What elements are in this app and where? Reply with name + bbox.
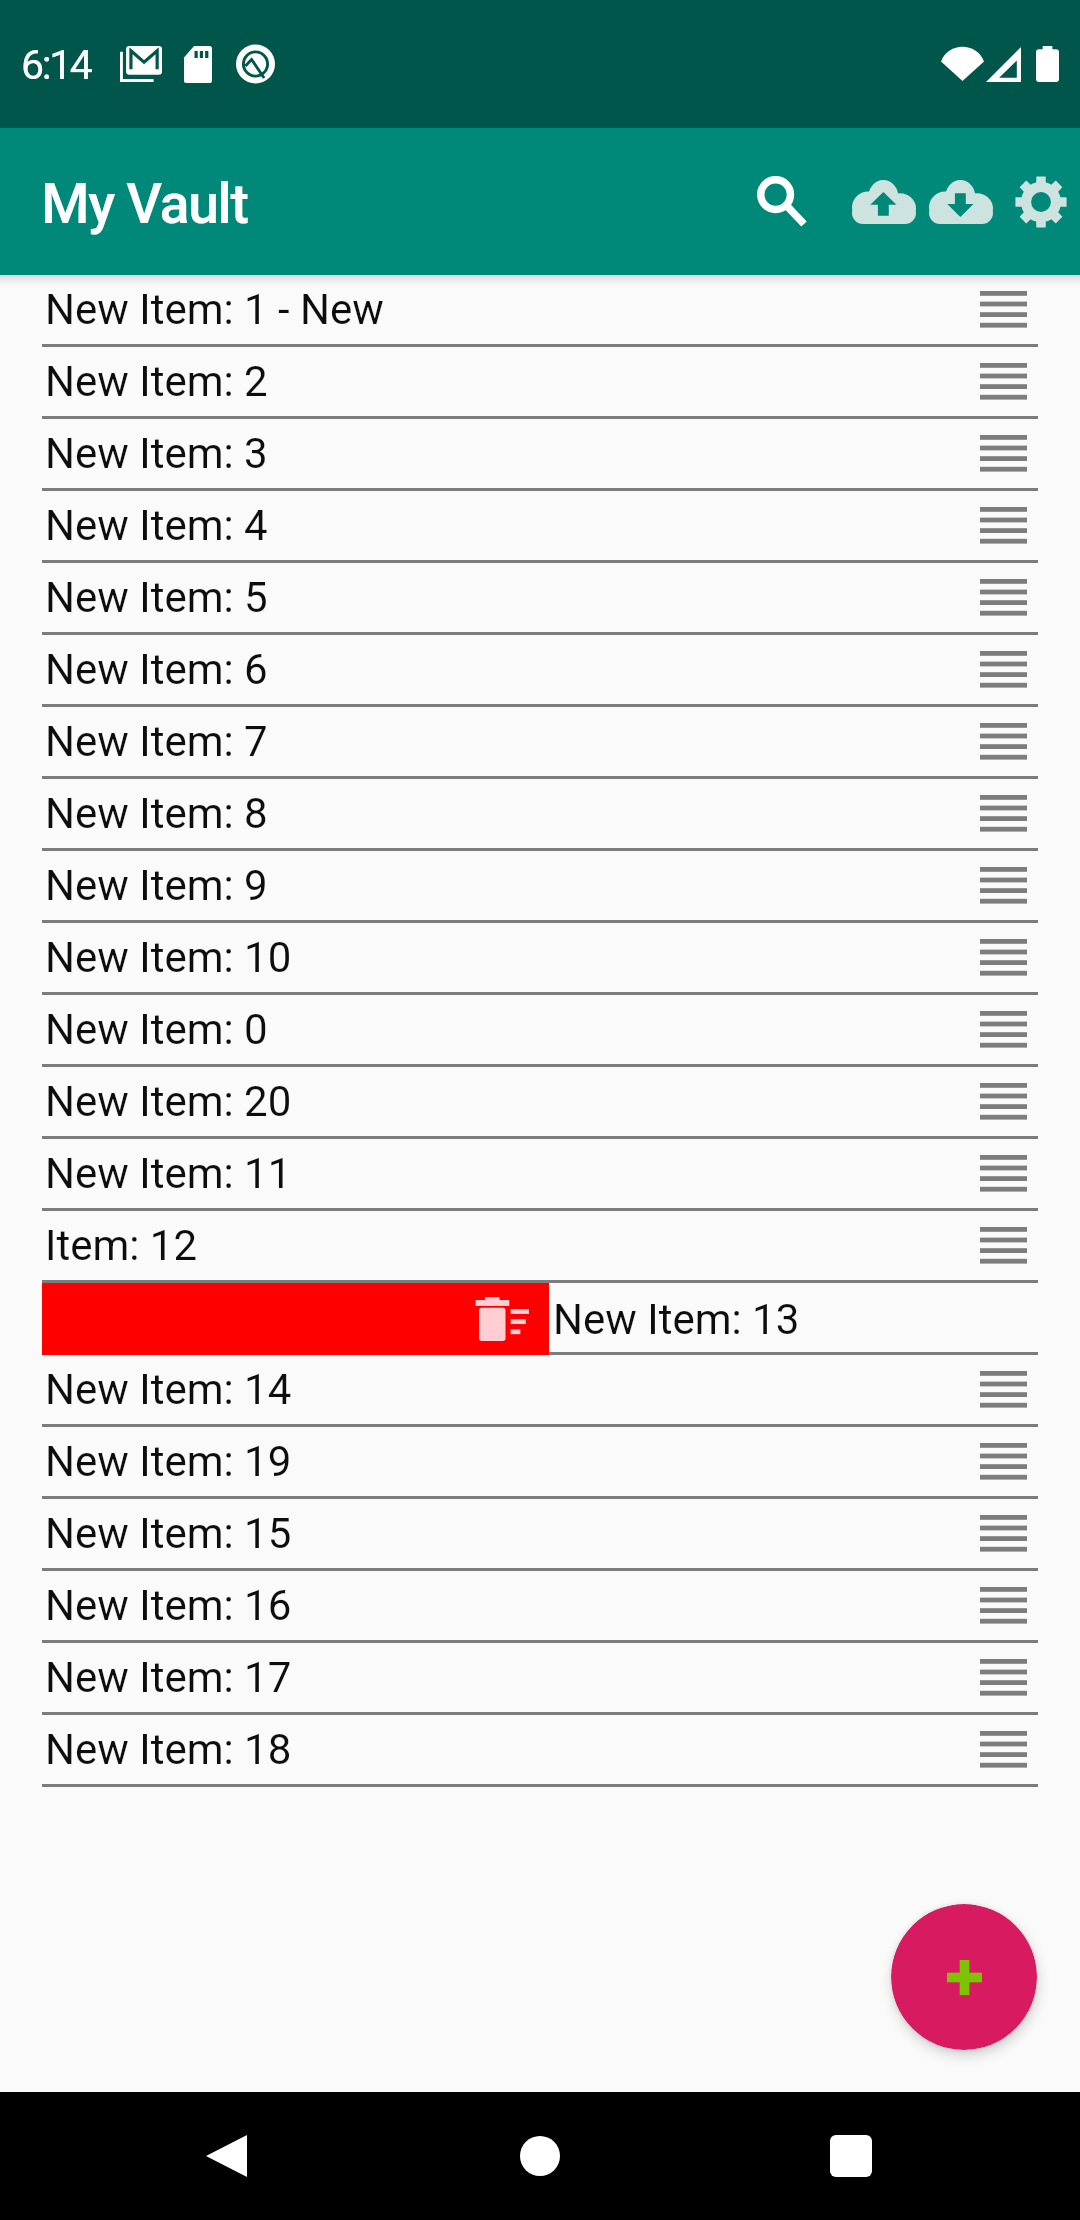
staticText: New Item: 7	[45, 717, 268, 766]
staticText: New Item: 0	[45, 1005, 268, 1054]
button[interactable]: Search	[732, 132, 827, 271]
button[interactable]: Back	[166, 2096, 286, 2216]
staticText: New Item: 13	[553, 1295, 800, 1344]
button[interactable]: New Item: 3	[0, 419, 1080, 491]
staticText: New Item: 1 - New	[45, 285, 384, 334]
button[interactable]: New Item: 10	[0, 923, 1080, 995]
button[interactable]: New Item: 5	[0, 563, 1080, 635]
button[interactable]: Add item	[891, 1904, 1037, 2050]
staticText: New Item: 20	[45, 1077, 292, 1126]
button[interactable]: New Item: 0	[0, 995, 1080, 1067]
button[interactable]: New Item: 20	[0, 1067, 1080, 1139]
staticText: New Item: 3	[45, 429, 268, 478]
staticText: New Item: 4	[45, 501, 268, 550]
button[interactable]: Delete	[42, 1283, 549, 1355]
button[interactable]: New Item: 11	[0, 1139, 1080, 1211]
button[interactable]: Item: 12	[0, 1211, 1080, 1283]
staticText: Item: 12	[45, 1221, 198, 1270]
staticText: New Item: 6	[45, 645, 268, 694]
button[interactable]: Recents	[791, 2096, 911, 2216]
staticText: New Item: 11	[45, 1149, 292, 1198]
button[interactable]: New Item: 2	[0, 347, 1080, 419]
button[interactable]: Settings	[991, 143, 1080, 260]
staticText: New Item: 18	[45, 1725, 292, 1774]
button[interactable]: New Item: 16	[0, 1571, 1080, 1643]
staticText: My Vault	[41, 172, 248, 237]
staticText: New Item: 8	[45, 789, 268, 838]
button[interactable]: New Item: 4	[0, 491, 1080, 563]
button[interactable]: New Item: 18	[0, 1715, 1080, 1787]
button[interactable]: Restore	[907, 143, 1015, 260]
button[interactable]: New Item: 14	[0, 1355, 1080, 1427]
staticText: New Item: 17	[45, 1653, 292, 1702]
button[interactable]: New Item: 9	[0, 851, 1080, 923]
button[interactable]: New Item: 8	[0, 779, 1080, 851]
staticText: New Item: 2	[45, 357, 268, 406]
staticText: New Item: 5	[45, 573, 268, 622]
button[interactable]: New Item: 6	[0, 635, 1080, 707]
button[interactable]: Home	[480, 2096, 600, 2216]
staticText: New Item: 19	[45, 1437, 292, 1486]
staticText: New Item: 10	[45, 933, 292, 982]
staticText: New Item: 15	[45, 1509, 292, 1558]
button[interactable]: New Item: 1 - New	[0, 275, 1080, 347]
button[interactable]: Backup	[830, 143, 938, 260]
button[interactable]: New Item: 15	[0, 1499, 1080, 1571]
staticText: New Item: 14	[45, 1365, 292, 1414]
staticText: New Item: 9	[45, 861, 268, 910]
staticText: 6:14	[21, 41, 91, 89]
button[interactable]: New Item: 17	[0, 1643, 1080, 1715]
button[interactable]: New Item: 7	[0, 707, 1080, 779]
button[interactable]: New Item: 19	[0, 1427, 1080, 1499]
staticText: New Item: 16	[45, 1581, 292, 1630]
